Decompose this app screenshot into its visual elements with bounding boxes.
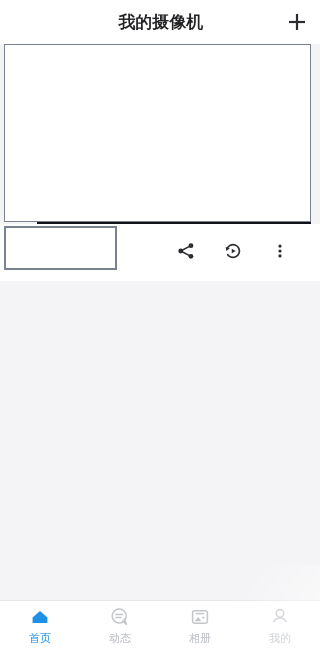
staticText: 相册 — [189, 631, 211, 645]
staticText: 首页 — [29, 631, 51, 645]
button[interactable]: 相册 — [160, 601, 240, 650]
button[interactable]: Camera thumbnail — [4, 226, 117, 270]
button[interactable]: 我的 — [240, 601, 320, 650]
button[interactable]: 动态 — [80, 601, 160, 650]
staticText: 我的 — [269, 631, 291, 645]
button[interactable]: Share — [172, 237, 199, 264]
staticText: 动态 — [109, 631, 131, 645]
button[interactable]: Add camera — [281, 6, 313, 38]
staticText: 我的摄像机 — [118, 12, 203, 33]
button[interactable]: Playback history — [219, 237, 246, 264]
button[interactable]: More options — [266, 237, 293, 264]
button[interactable]: 首页 — [0, 601, 80, 650]
